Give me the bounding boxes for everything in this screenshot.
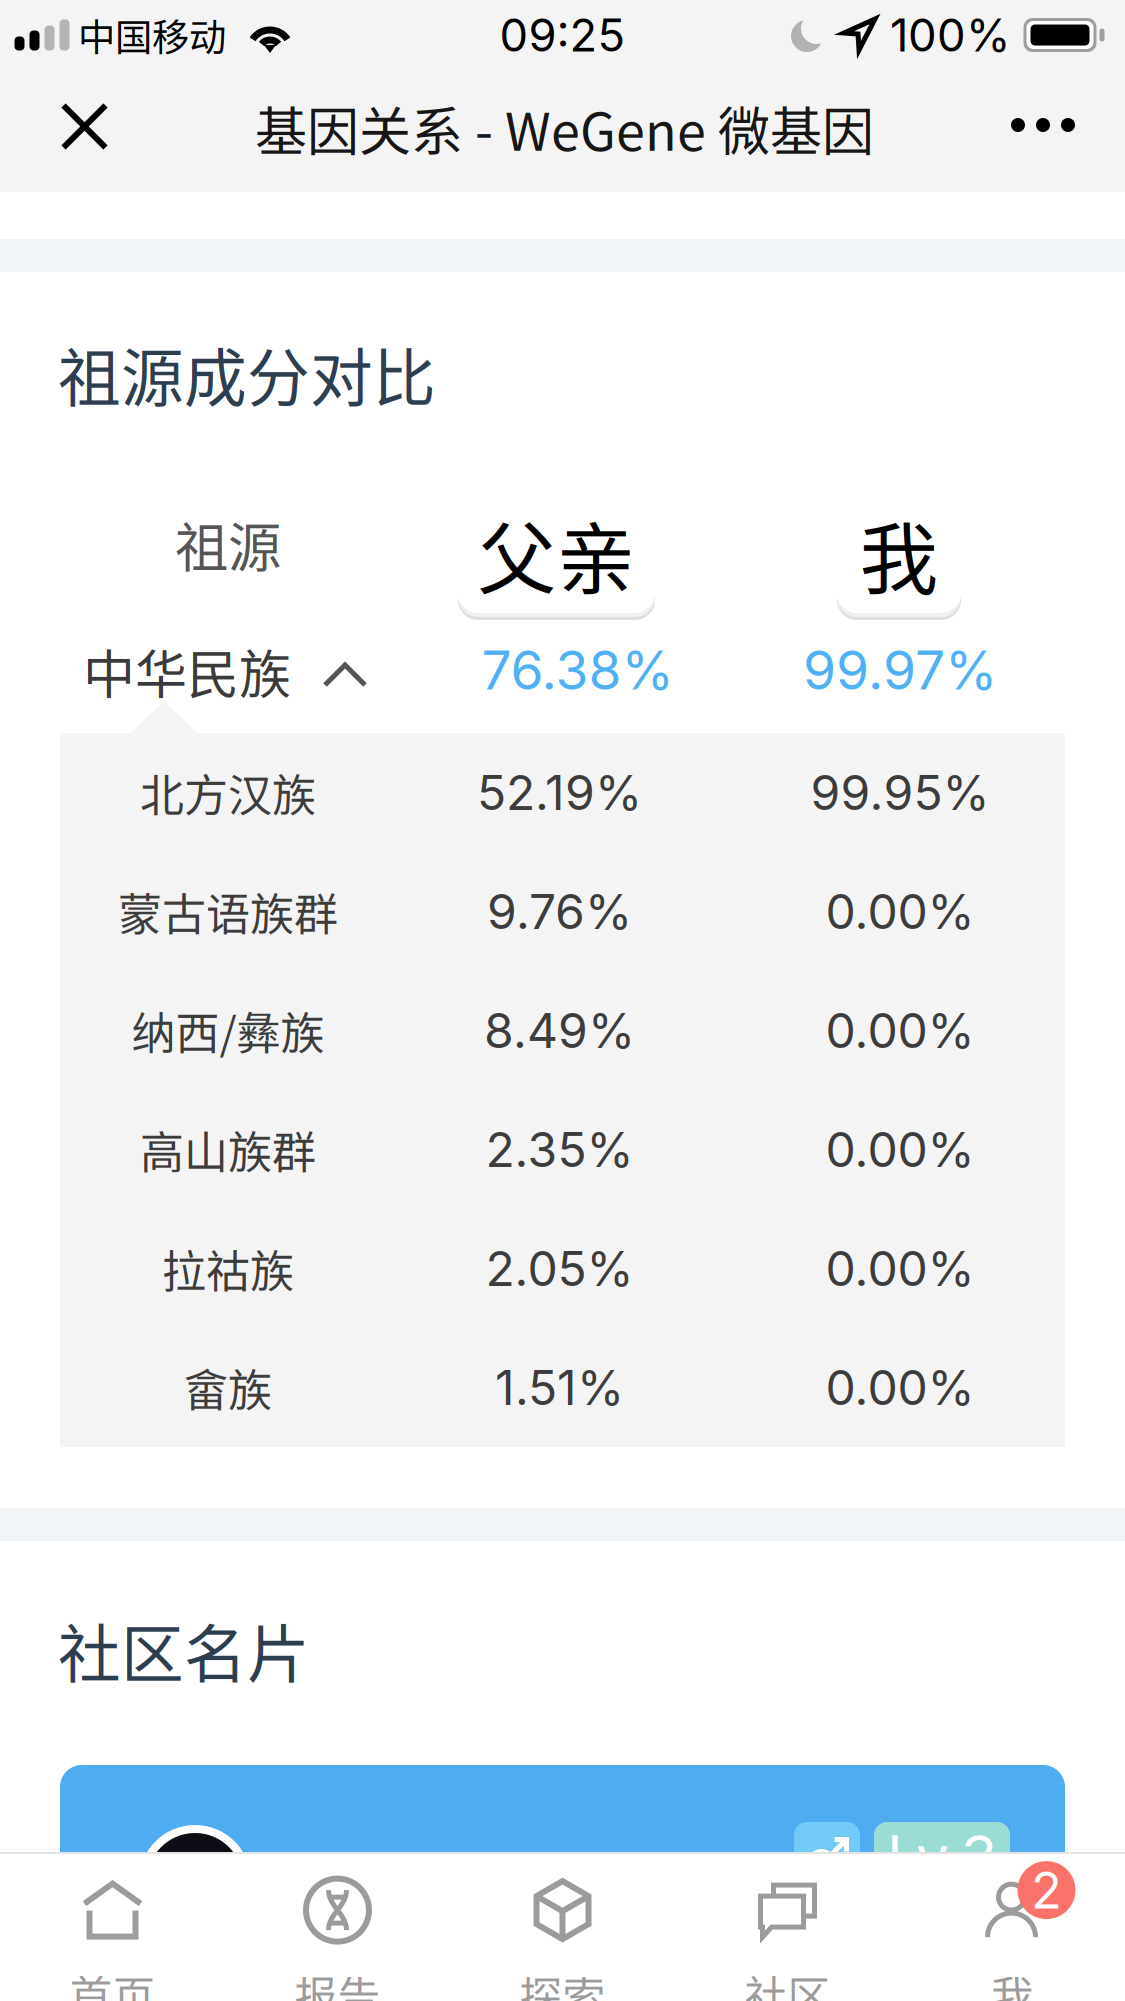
button[interactable]: 2 xyxy=(900,1877,1125,2001)
staticText: 高山族群 xyxy=(140,1118,316,1181)
staticText: 0.00% xyxy=(825,1120,974,1179)
staticText: 中华民族 xyxy=(83,633,291,709)
staticText: 纳西/彝族 xyxy=(131,999,324,1062)
staticText: 拉祜族 xyxy=(162,1237,294,1300)
staticText: 基因关系 - WeGene 微基因 xyxy=(255,90,874,166)
staticText: 99.95% xyxy=(810,763,989,822)
staticText: 2 xyxy=(1031,1859,1062,1921)
button[interactable]: 父亲 xyxy=(458,509,655,629)
staticText: 76.38% xyxy=(481,638,673,702)
staticText: 父亲 xyxy=(477,497,635,611)
staticText: 0.00% xyxy=(825,1358,974,1417)
staticText: 8.49% xyxy=(484,1001,635,1060)
button[interactable]: 首页 xyxy=(0,1877,225,2001)
staticText: 2.35% xyxy=(485,1120,633,1179)
staticText: 祖源成分对比 xyxy=(58,328,436,419)
staticText: 我 xyxy=(859,497,938,611)
button[interactable]: 探索 xyxy=(450,1877,675,2001)
staticText: 09:25 xyxy=(499,8,625,62)
staticText: 0.00% xyxy=(825,1239,974,1298)
staticText: 中国移动 xyxy=(78,8,226,62)
staticText: 0.00% xyxy=(825,1001,974,1060)
button[interactable]: 社区 xyxy=(675,1877,900,2001)
staticText: 我 xyxy=(991,1963,1034,2001)
staticText: Lv.3 xyxy=(887,1821,997,1892)
staticText: 社区 xyxy=(744,1963,830,2001)
staticText: 52.19% xyxy=(477,763,642,822)
staticText: 9.76% xyxy=(487,882,632,941)
staticText: 100% xyxy=(890,8,1011,62)
staticText: 社区名片 xyxy=(58,1604,310,1695)
staticText: 0.00% xyxy=(825,882,974,941)
staticText: 蒙古语族群 xyxy=(118,880,338,943)
staticText: 畲族 xyxy=(184,1356,272,1419)
button[interactable]: 报告 xyxy=(225,1877,450,2001)
staticText: 2.05% xyxy=(485,1239,633,1298)
staticText: 北方汉族 xyxy=(140,761,316,824)
staticText: 报告 xyxy=(294,1963,380,2001)
button[interactable]: 更多 xyxy=(981,70,1111,192)
staticText: 祖源 xyxy=(175,505,281,583)
button[interactable]: 我 xyxy=(837,509,961,629)
button[interactable]: 关闭 xyxy=(14,70,144,192)
staticText: 首页 xyxy=(69,1963,155,2001)
staticText: 探索 xyxy=(519,1963,605,2001)
staticText: 1.51% xyxy=(495,1358,624,1417)
staticText: 99.97% xyxy=(803,638,997,702)
